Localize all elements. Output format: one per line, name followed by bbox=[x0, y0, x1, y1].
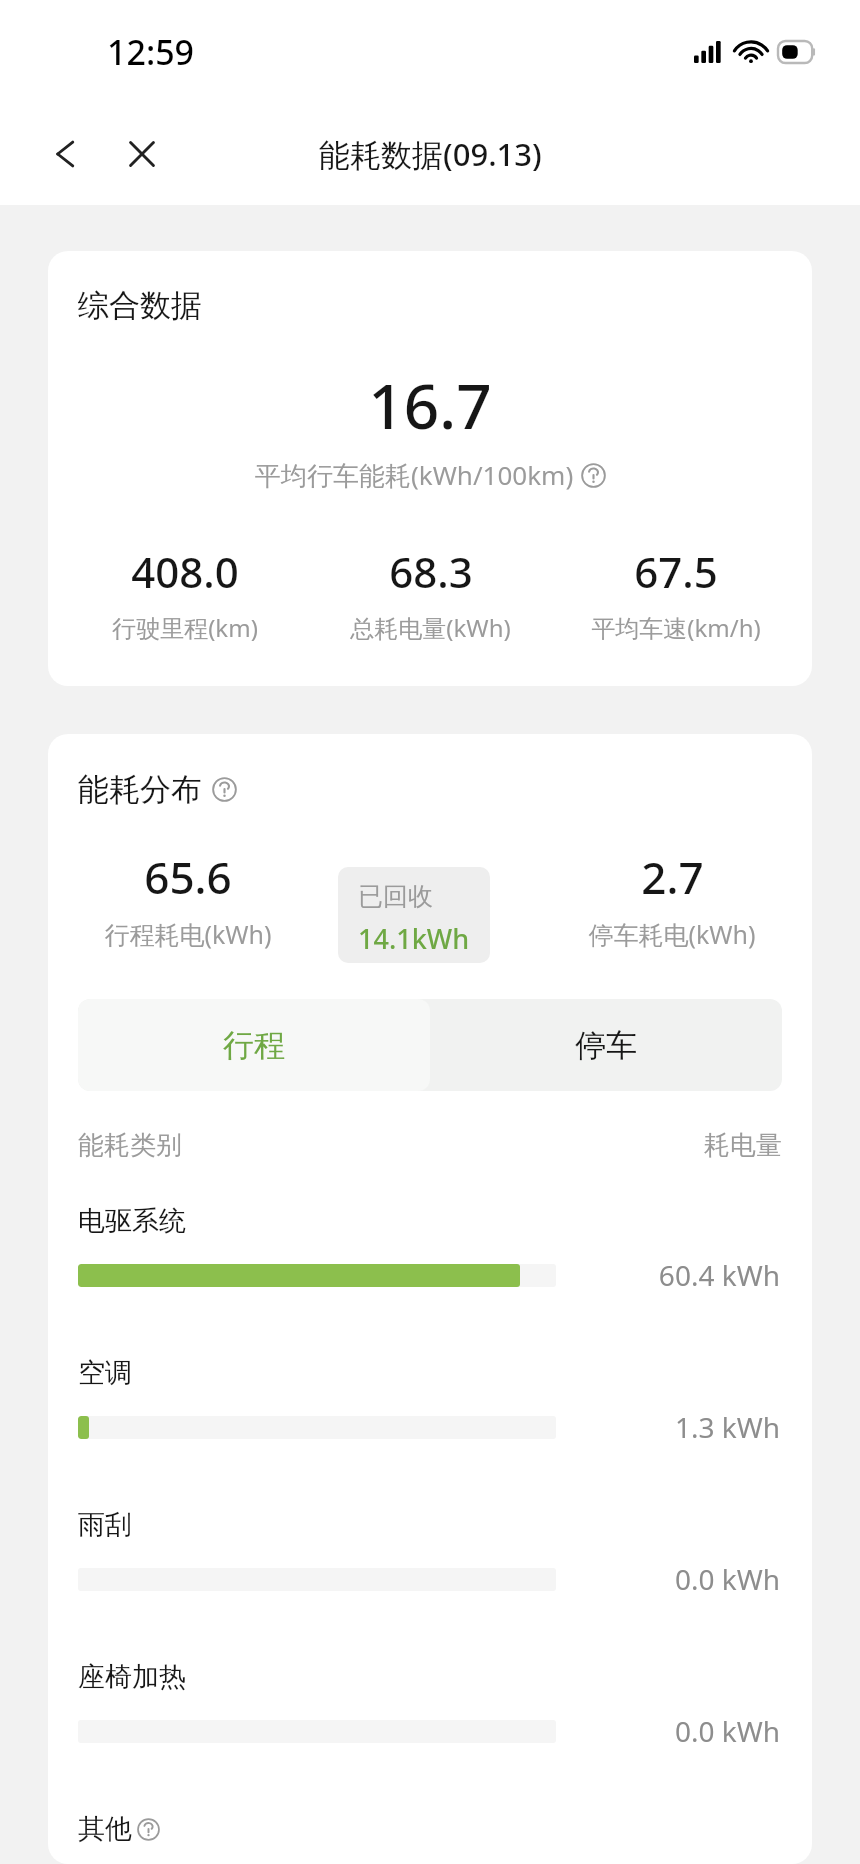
staticText: 12:59 bbox=[107, 29, 195, 75]
staticText: 0.0 kWh bbox=[556, 1560, 780, 1598]
staticText: 14.1kWh bbox=[358, 920, 470, 949]
button[interactable]: 其他 bbox=[78, 1812, 782, 1864]
staticText: 68.3 bbox=[389, 543, 473, 600]
staticText: 2.7 bbox=[641, 847, 704, 907]
staticText: 总耗电量(kWh) bbox=[350, 611, 511, 644]
button[interactable]: 空调 bbox=[78, 1356, 782, 1446]
staticText: 行驶里程(km) bbox=[112, 611, 258, 644]
staticText: 408.0 bbox=[131, 543, 239, 600]
staticText: 行程 bbox=[223, 1026, 285, 1065]
staticText: 能耗数据(09.13) bbox=[319, 133, 542, 175]
staticText: 座椅加热 bbox=[78, 1660, 186, 1694]
staticText: 0.0 kWh bbox=[556, 1712, 780, 1750]
staticText: 其他 bbox=[78, 1812, 132, 1846]
button[interactable]: 电驱系统 bbox=[78, 1204, 782, 1294]
button[interactable]: Back bbox=[40, 128, 92, 180]
staticText: 电驱系统 bbox=[78, 1204, 186, 1238]
staticText: 1.3 kWh bbox=[556, 1408, 780, 1446]
staticText: 平均行车能耗(kWh/100km) bbox=[255, 457, 574, 493]
button[interactable]: 座椅加热 bbox=[78, 1660, 782, 1750]
button[interactable]: 停车 bbox=[430, 999, 782, 1091]
staticText: 67.5 bbox=[634, 543, 718, 600]
staticText: 行程耗电(kWh) bbox=[104, 917, 272, 951]
button[interactable]: 雨刮 bbox=[78, 1508, 782, 1598]
staticText: 综合数据 bbox=[78, 286, 202, 325]
staticText: 平均车速(km/h) bbox=[591, 611, 761, 644]
staticText: 耗电量 bbox=[704, 1129, 782, 1162]
staticText: 空调 bbox=[78, 1356, 132, 1390]
staticText: 65.6 bbox=[144, 847, 232, 907]
button[interactable]: 行程 bbox=[78, 999, 430, 1091]
staticText: 60.4 kWh bbox=[556, 1256, 780, 1294]
staticText: 已回收 bbox=[358, 881, 433, 912]
staticText: 能耗分布 bbox=[78, 770, 202, 809]
staticText: 停车耗电(kWh) bbox=[588, 917, 756, 951]
staticText: 雨刮 bbox=[78, 1508, 132, 1542]
staticText: 16.7 bbox=[368, 363, 492, 447]
staticText: 停车 bbox=[575, 1026, 637, 1065]
staticText: 能耗类别 bbox=[78, 1129, 182, 1162]
button[interactable]: Close bbox=[116, 128, 168, 180]
